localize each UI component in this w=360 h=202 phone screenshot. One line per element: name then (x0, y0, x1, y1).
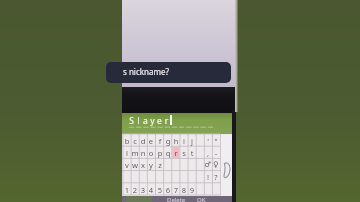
staticText: r (163, 115, 170, 127)
button[interactable]: g (164, 136, 172, 146)
button[interactable]: ' (204, 136, 212, 146)
button[interactable]: s nickname? (106, 62, 231, 83)
button[interactable]: f (156, 136, 164, 146)
button[interactable]: OK (197, 196, 206, 202)
button[interactable]: o (147, 148, 155, 158)
staticText: a (142, 115, 149, 127)
button[interactable]: ♂ (204, 160, 212, 169)
staticText: e (156, 115, 163, 127)
button[interactable]: b (123, 136, 131, 146)
button[interactable]: 1 (123, 185, 131, 195)
button[interactable]: , (204, 148, 212, 158)
button[interactable]: ♀ (212, 160, 220, 169)
button[interactable]: w (131, 160, 139, 170)
button[interactable]: Back (221, 135, 232, 196)
button[interactable]: h (172, 136, 180, 146)
button[interactable]: y (147, 160, 155, 170)
staticText: S (128, 115, 135, 127)
staticText: l (135, 115, 142, 127)
button[interactable]: q (164, 148, 172, 158)
button[interactable]: " (212, 136, 220, 146)
button[interactable]: l (123, 148, 131, 158)
button[interactable]: ! (204, 172, 212, 182)
staticText: y (149, 115, 156, 127)
button[interactable]: 3 (139, 185, 147, 195)
button[interactable]: i (180, 136, 188, 146)
button[interactable]: x (139, 160, 147, 170)
button[interactable]: t (188, 148, 196, 158)
button[interactable]: 5 (156, 185, 164, 195)
button[interactable]: 4 (147, 185, 155, 195)
button[interactable]: z (156, 160, 164, 170)
button[interactable]: 2 (131, 185, 139, 195)
button[interactable]: - (212, 148, 220, 158)
button[interactable]: ? (212, 172, 220, 182)
button[interactable]: m (131, 148, 139, 158)
button[interactable]: p (156, 148, 164, 158)
button[interactable]: 8 (180, 185, 188, 195)
staticText: s nickname? (123, 66, 169, 77)
button[interactable]: n (139, 148, 147, 158)
button[interactable]: 9 (188, 185, 196, 195)
button[interactable]: Delete (167, 196, 186, 202)
button[interactable]: e (147, 136, 155, 146)
button[interactable]: v (123, 160, 131, 170)
button[interactable]: c (131, 136, 139, 146)
button[interactable]: d (139, 136, 147, 146)
button[interactable]: 6 (164, 185, 172, 195)
button[interactable]: j (188, 136, 196, 146)
button[interactable]: 7 (172, 185, 180, 195)
button[interactable]: r (172, 148, 180, 158)
button[interactable]: s (180, 148, 188, 158)
